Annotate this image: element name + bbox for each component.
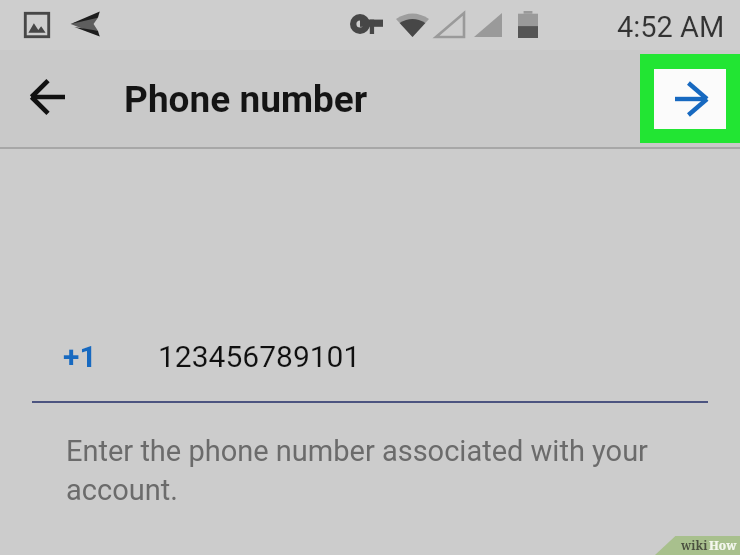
button[interactable]: +1: [40, 330, 120, 386]
staticText: 4:52 AM: [617, 10, 725, 44]
button[interactable]: Next: [640, 54, 740, 143]
staticText: Phone number: [124, 78, 368, 121]
staticText: Enter the phone number associated with y…: [66, 434, 666, 507]
staticText: How: [709, 537, 737, 553]
staticText: +1: [63, 339, 97, 374]
staticText: wiki: [681, 537, 708, 553]
button[interactable]: Back: [22, 71, 74, 123]
staticText: 123456789101: [158, 339, 361, 374]
button[interactable]: 123456789101: [132, 330, 708, 386]
